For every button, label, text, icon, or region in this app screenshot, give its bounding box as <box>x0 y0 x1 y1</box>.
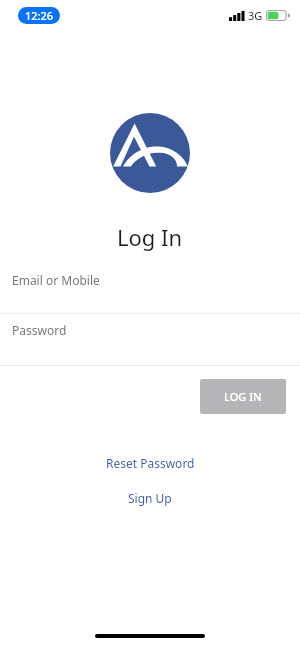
staticText: 12:26 <box>25 8 54 23</box>
staticText: 3G <box>248 8 263 23</box>
staticText: LOG IN <box>224 389 262 404</box>
button[interactable]: Reset Password <box>96 450 205 476</box>
button[interactable]: LOG IN <box>200 379 286 414</box>
staticText: Email or Mobile <box>12 272 100 288</box>
staticText: Password <box>12 322 67 338</box>
button[interactable]: Email or Mobile <box>0 262 300 313</box>
button[interactable]: Password <box>0 314 300 365</box>
button[interactable]: Sign Up <box>118 485 182 511</box>
staticText: Sign Up <box>128 490 172 506</box>
staticText: Log In <box>117 222 183 252</box>
staticText: Reset Password <box>106 455 195 471</box>
